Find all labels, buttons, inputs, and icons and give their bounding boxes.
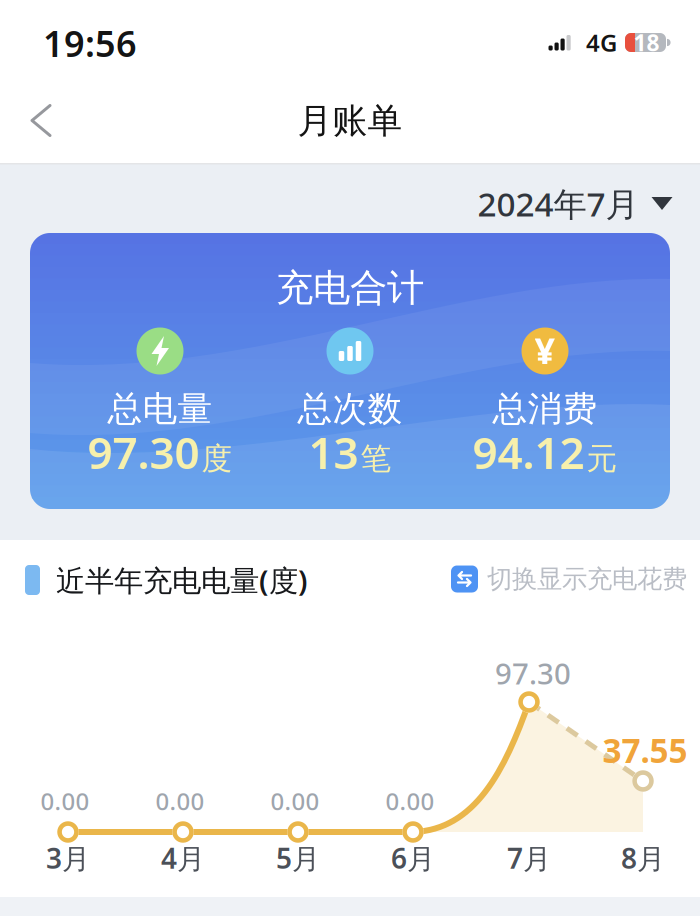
- staticText: 度: [201, 440, 232, 478]
- staticText: 2024年7月: [477, 181, 638, 226]
- staticText: 总消费: [492, 388, 597, 430]
- staticText: 3月: [46, 839, 90, 877]
- staticText: 0.00: [40, 785, 89, 817]
- button[interactable]: 切换显示充电花费: [451, 563, 687, 594]
- staticText: 4月: [161, 839, 205, 877]
- staticText: 0.00: [385, 785, 434, 817]
- button[interactable]: 选择月份: [477, 181, 672, 226]
- staticText: 0.00: [155, 785, 204, 817]
- staticText: ¥: [534, 327, 555, 374]
- staticText: 元: [586, 440, 617, 478]
- staticText: 18: [633, 27, 659, 57]
- staticText: 97.30: [495, 653, 571, 692]
- staticText: 0.00: [270, 785, 319, 817]
- staticText: 充电合计: [276, 265, 424, 311]
- staticText: 13: [308, 423, 358, 481]
- staticText: 笔: [360, 440, 391, 478]
- staticText: 总次数: [297, 388, 402, 430]
- staticText: 19:56: [43, 19, 137, 67]
- staticText: 月账单: [297, 100, 402, 142]
- staticText: 7月: [507, 839, 551, 877]
- staticText: 94.12: [472, 423, 584, 481]
- staticText: 总电量: [107, 388, 212, 430]
- staticText: 8月: [621, 839, 665, 877]
- staticText: 近半年充电电量(度): [56, 560, 308, 599]
- staticText: 4G: [586, 27, 617, 58]
- staticText: 切换显示充电花费: [487, 563, 687, 594]
- button[interactable]: Back: [16, 99, 72, 144]
- staticText: 97.30: [87, 423, 199, 481]
- staticText: 6月: [391, 839, 435, 877]
- staticText: 37.55: [602, 728, 687, 772]
- staticText: 5月: [276, 839, 320, 877]
